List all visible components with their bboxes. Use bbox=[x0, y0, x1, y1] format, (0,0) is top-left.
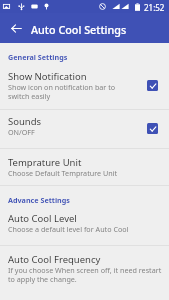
button[interactable] bbox=[0, 149, 169, 185]
button[interactable]: Toggle Show Notification bbox=[147, 80, 158, 91]
staticText: Choose a default level for Auto Cool bbox=[8, 224, 129, 234]
button[interactable] bbox=[0, 45, 169, 109]
staticText: Auto Cool Level bbox=[8, 212, 77, 225]
staticText: 21:52 bbox=[144, 2, 165, 13]
button[interactable] bbox=[0, 207, 169, 245]
staticText: ON/OFF bbox=[8, 127, 35, 137]
staticText: switch easily bbox=[8, 91, 51, 101]
staticText: Show icon on notification bar to bbox=[8, 82, 116, 92]
button[interactable]: Back bbox=[5, 13, 27, 43]
staticText: Show Notification bbox=[8, 70, 87, 83]
button[interactable] bbox=[0, 110, 169, 148]
staticText: Advance Settings bbox=[8, 195, 70, 205]
staticText: Sounds bbox=[8, 115, 42, 128]
button[interactable]: Toggle Sounds bbox=[147, 123, 158, 134]
staticText: Auto Cool Settings bbox=[31, 22, 127, 37]
staticText: Auto Cool Frequency bbox=[8, 253, 101, 266]
staticText: If you choose When screen off, it need r… bbox=[8, 265, 162, 275]
staticText: to apply the change. bbox=[8, 274, 77, 284]
staticText: General Settings bbox=[8, 52, 68, 62]
staticText: Temprature Unit bbox=[8, 156, 82, 169]
button[interactable] bbox=[0, 246, 169, 292]
staticText: Choose Default Temprature Unit bbox=[8, 168, 118, 178]
